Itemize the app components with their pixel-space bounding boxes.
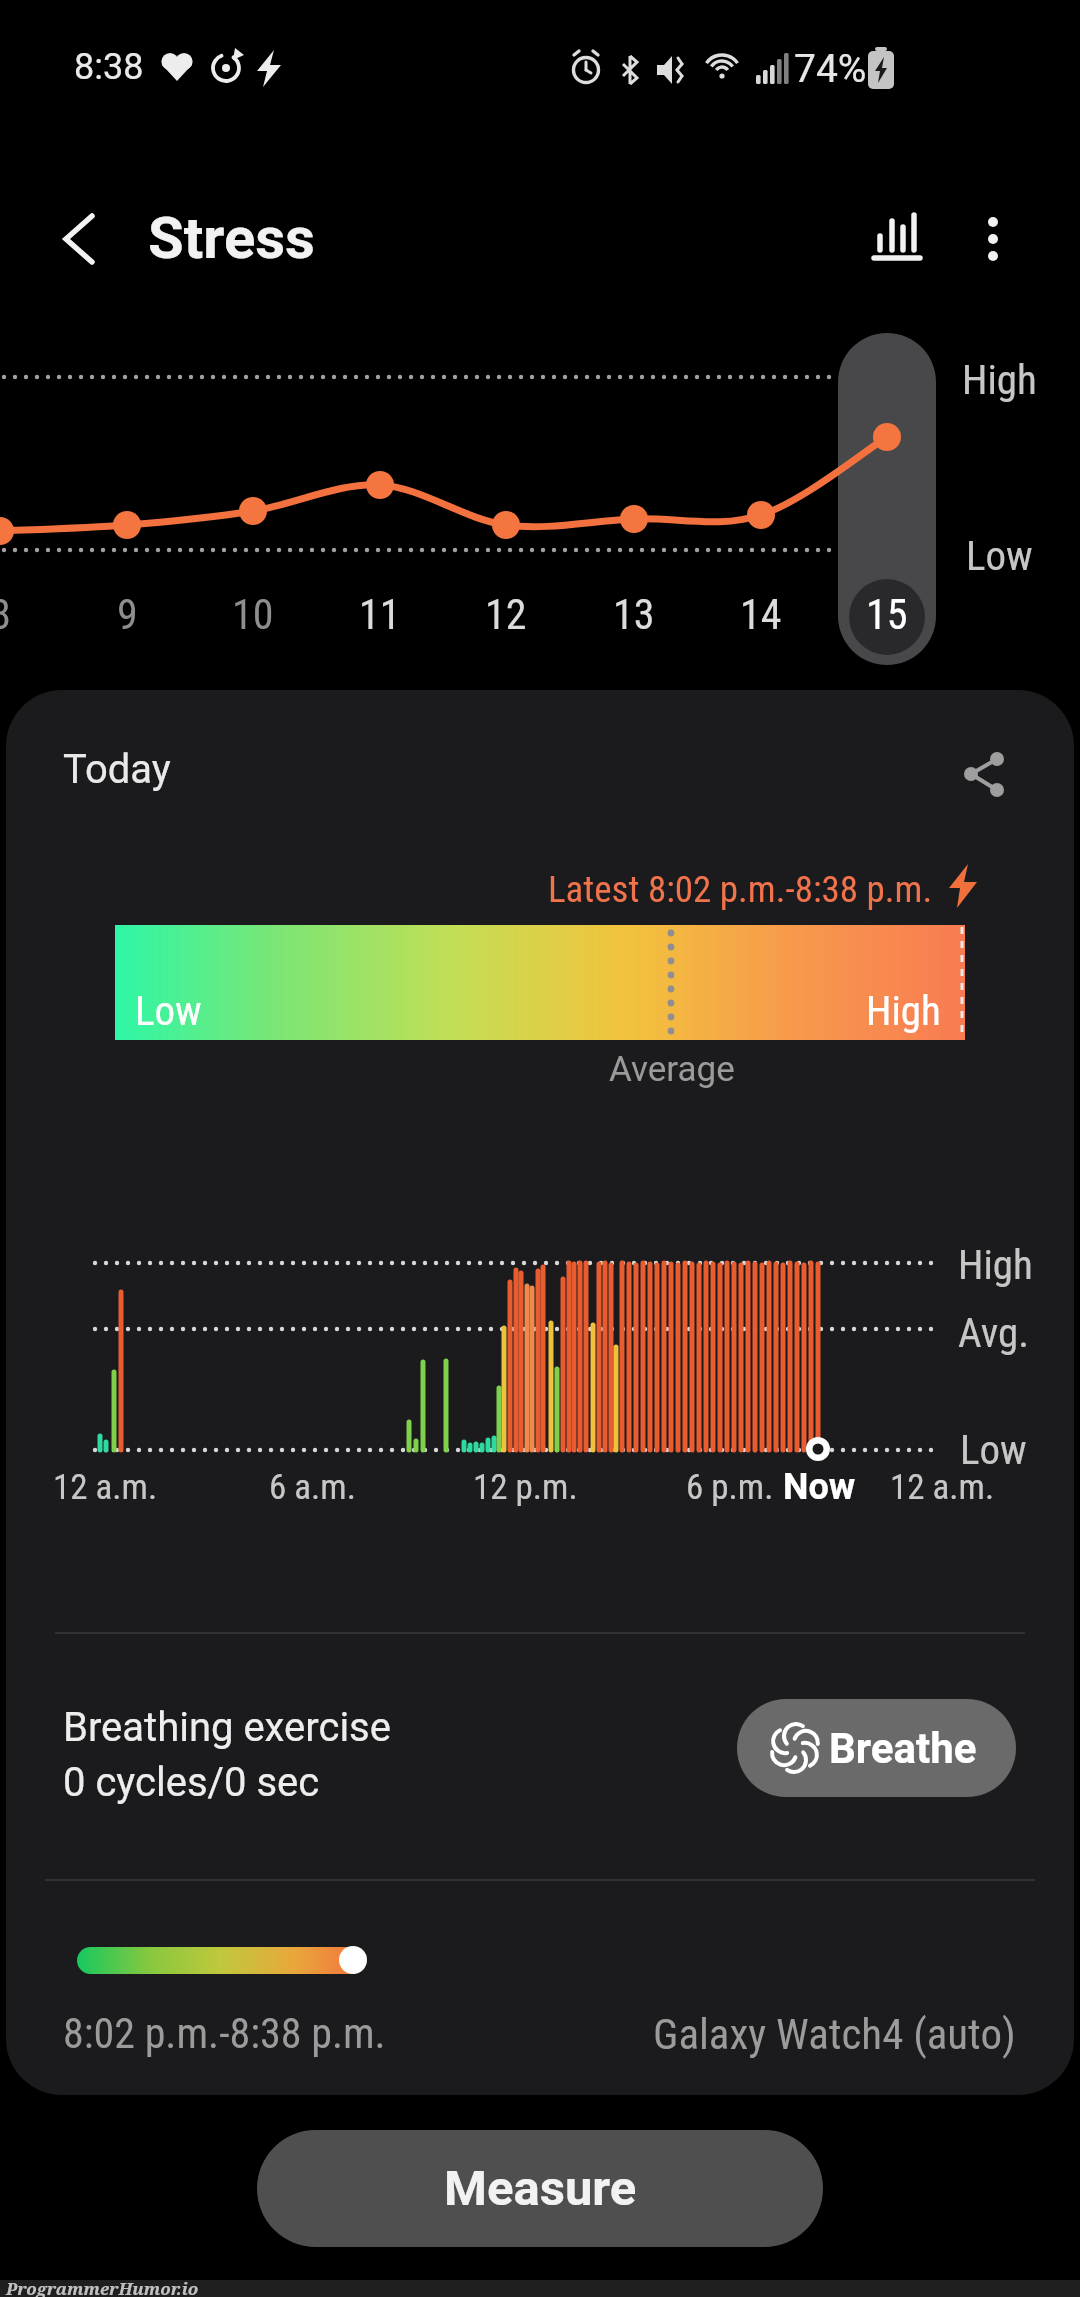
staticText: Breathe	[829, 1724, 977, 1773]
staticText: Low	[966, 532, 1033, 580]
staticText: 6 a.m.	[269, 1467, 356, 1508]
staticText: 10	[232, 590, 274, 639]
staticText: ProgrammerHumor.io	[6, 2277, 199, 2297]
staticText: Avg.	[958, 1309, 1029, 1357]
staticText: Low	[960, 1426, 1027, 1474]
staticText: 12	[485, 590, 527, 639]
button[interactable]	[868, 205, 926, 265]
staticText: Now	[783, 1466, 856, 1508]
staticText: 6 p.m.	[686, 1467, 774, 1508]
staticText: 0 cycles/0 sec	[63, 1759, 320, 1806]
staticText: 13	[613, 590, 655, 639]
button[interactable]: Breathe	[737, 1699, 1016, 1797]
staticText: 8:38	[74, 46, 144, 88]
button[interactable]	[935, 735, 1015, 815]
button[interactable]	[56, 212, 112, 268]
staticText: 11	[359, 590, 401, 639]
staticText: Breathing exercise	[63, 1704, 391, 1751]
staticText: High	[962, 356, 1037, 404]
staticText: Measure	[444, 2160, 637, 2217]
button[interactable]	[838, 333, 936, 665]
staticText: Stress	[148, 204, 315, 272]
staticText: Average	[609, 1049, 735, 1090]
button[interactable]: Measure	[257, 2130, 823, 2247]
staticText: 14	[740, 590, 782, 639]
staticText: 12 a.m.	[890, 1467, 995, 1508]
staticText: Galaxy Watch4 (auto)	[653, 2009, 1016, 2059]
staticText: Latest 8:02 p.m.-8:38 p.m.	[548, 868, 933, 911]
staticText: 12 p.m.	[473, 1467, 578, 1508]
staticText: 8:02 p.m.-8:38 p.m.	[63, 2009, 386, 2058]
staticText: High	[958, 1241, 1033, 1289]
staticText: 15	[866, 590, 908, 639]
staticText: 12 a.m.	[53, 1467, 158, 1508]
staticText: 9	[117, 590, 138, 639]
staticText: Today	[63, 746, 171, 793]
staticText: High	[866, 987, 941, 1035]
staticText: 74%	[794, 46, 867, 92]
staticText: Low	[135, 987, 202, 1035]
button[interactable]	[965, 205, 1021, 271]
staticText: 8	[0, 590, 11, 639]
